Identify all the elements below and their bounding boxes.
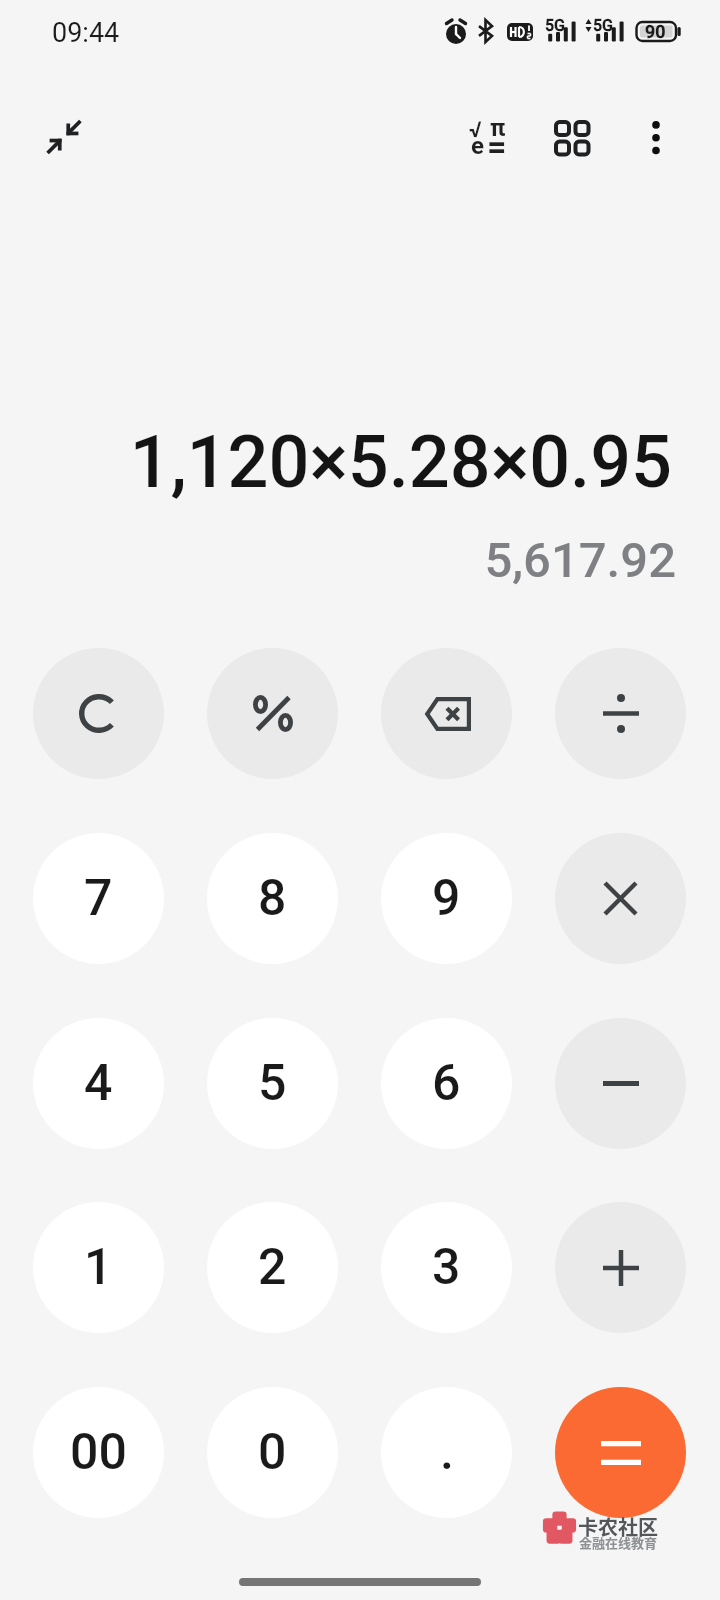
button[interactable]: Equals [555, 1387, 686, 1518]
button[interactable]: 4 [33, 1018, 164, 1149]
staticText: 2 [258, 1238, 287, 1297]
staticText: π [490, 114, 506, 142]
staticText: 7 [84, 869, 113, 928]
staticText: 金融在线教育 [579, 1533, 658, 1552]
staticText: . [440, 1423, 454, 1482]
button[interactable]: Minus [555, 1018, 686, 1149]
staticText: 卡农社区 [578, 1512, 658, 1541]
button[interactable]: 2 [207, 1202, 338, 1333]
button[interactable]: 7 [33, 833, 164, 964]
staticText: = [487, 126, 507, 166]
staticText: 3 [432, 1238, 461, 1297]
staticText: 1 [84, 1238, 113, 1297]
button[interactable]: . [381, 1387, 512, 1518]
button[interactable]: 6 [381, 1018, 512, 1149]
button[interactable]: 0 [207, 1387, 338, 1518]
staticText: 00 [70, 1423, 127, 1482]
staticText: 09:44 [52, 17, 120, 49]
staticText: √ [469, 117, 482, 143]
button[interactable]: 3 [381, 1202, 512, 1333]
button[interactable]: Apps [535, 101, 607, 173]
staticText: 1,120×5.28×0.95 [0, 420, 672, 504]
staticText: 8 [258, 869, 287, 928]
button[interactable]: Clear [33, 648, 164, 779]
button[interactable]: Delete [381, 648, 512, 779]
staticText: 6 [432, 1054, 461, 1113]
staticText: 0 [258, 1423, 287, 1482]
button[interactable]: Percent [207, 648, 338, 779]
staticText: e [471, 132, 484, 160]
staticText: 5,617.92 [0, 532, 676, 589]
staticText: 5G [545, 16, 565, 35]
button[interactable]: More options [620, 101, 692, 173]
staticText: 4 [84, 1054, 113, 1113]
button[interactable]: Collapse [28, 101, 100, 173]
button[interactable]: 00 [33, 1387, 164, 1518]
button[interactable]: Plus [555, 1202, 686, 1333]
button[interactable]: Multiply [555, 833, 686, 964]
button[interactable]: 5 [207, 1018, 338, 1149]
staticText: 5G [593, 16, 613, 35]
staticText: 5 [258, 1054, 287, 1113]
button[interactable]: Divide [555, 648, 686, 779]
staticText: 90 [645, 21, 666, 42]
button[interactable]: 8 [207, 833, 338, 964]
button[interactable]: 1 [33, 1202, 164, 1333]
staticText: 9 [432, 869, 461, 928]
button[interactable]: 9 [381, 833, 512, 964]
button[interactable]: Scientific calculator [452, 101, 524, 173]
